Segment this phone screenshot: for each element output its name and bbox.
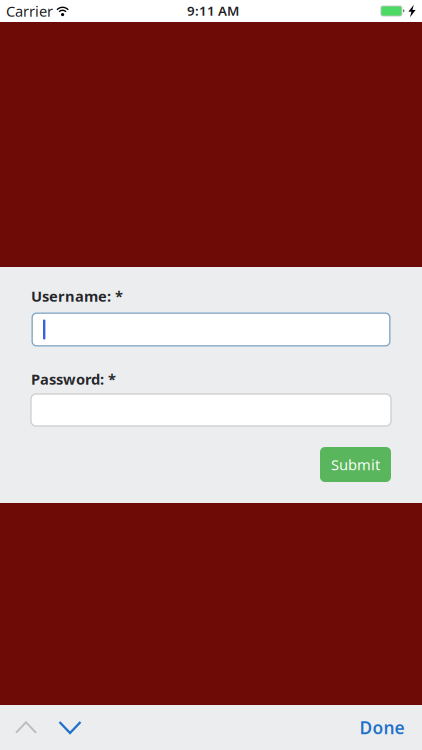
- button[interactable]: Previous field: [4, 705, 48, 750]
- staticText: Done: [359, 716, 404, 739]
- staticText: 9:11 AM: [187, 2, 239, 19]
- button[interactable]: Next field: [48, 705, 92, 750]
- staticText: Password: *: [31, 369, 116, 389]
- staticText: Carrier: [6, 1, 53, 21]
- staticText: Username: *: [31, 286, 123, 306]
- button[interactable]: Done: [355, 705, 418, 750]
- staticText: Submit: [331, 455, 380, 474]
- button[interactable]: Submit: [320, 447, 391, 482]
